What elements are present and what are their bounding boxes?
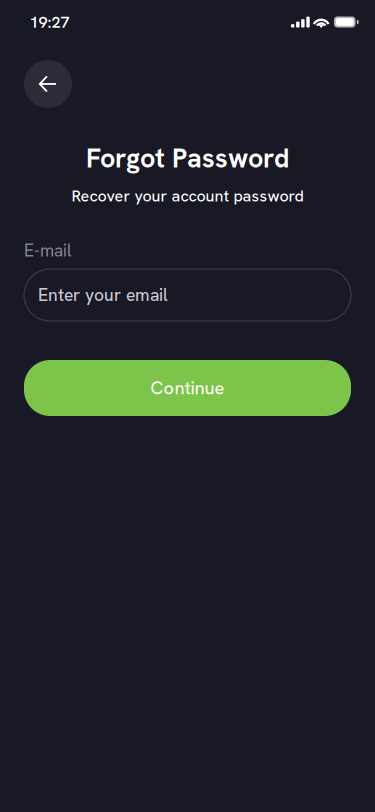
button[interactable]: Continue: [24, 360, 351, 416]
staticText: 19:27: [29, 11, 69, 33]
staticText: Forgot Password: [86, 140, 289, 176]
staticText: Continue: [150, 376, 224, 400]
staticText: Enter your email: [38, 284, 168, 306]
staticText: E-mail: [24, 239, 72, 262]
staticText: Recover your account password: [71, 185, 303, 206]
button[interactable]: Back: [24, 60, 72, 108]
